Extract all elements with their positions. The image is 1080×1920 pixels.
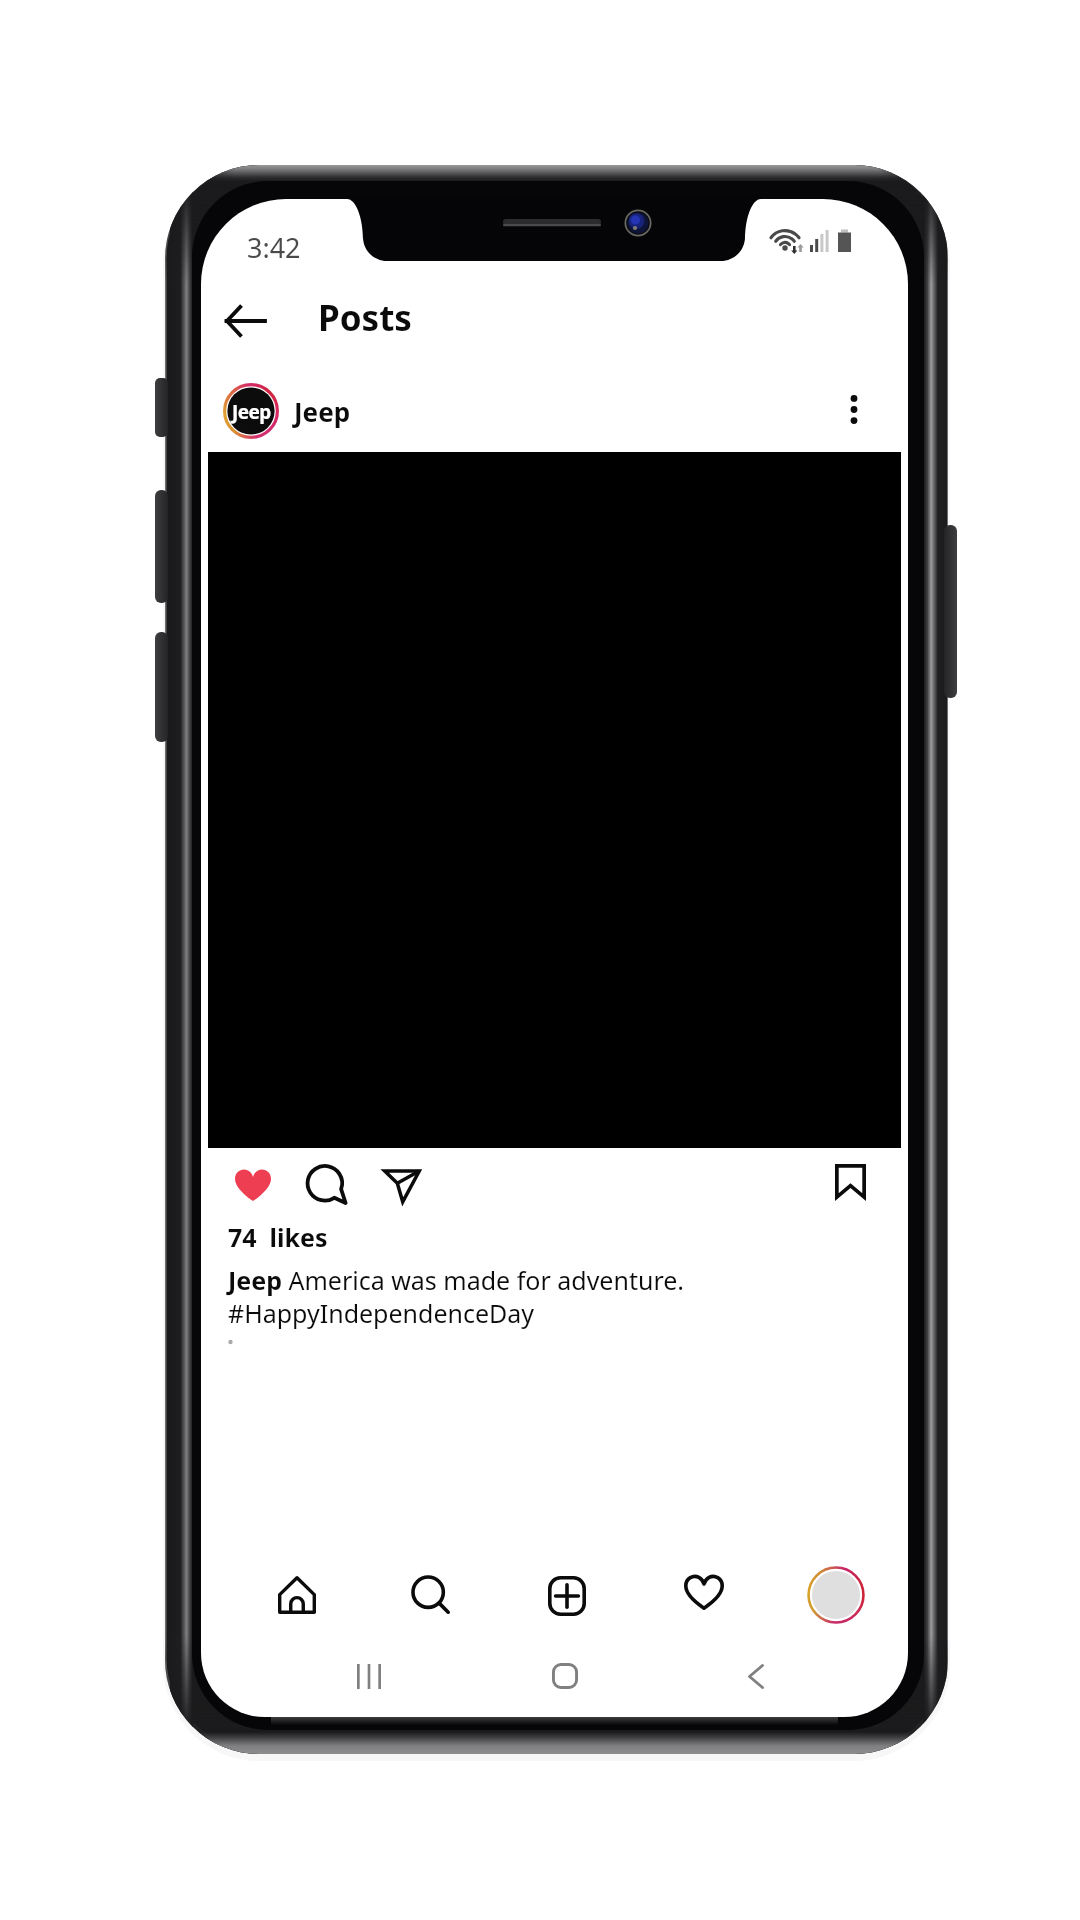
button[interactable]: More options	[822, 377, 886, 441]
button[interactable]: Jeep	[294, 394, 351, 429]
button[interactable]: Back	[727, 1647, 785, 1705]
button[interactable]: 74 likes	[228, 1220, 328, 1254]
button[interactable]: Save	[816, 1147, 884, 1215]
button[interactable]: Share	[368, 1151, 436, 1219]
button[interactable]: Profile	[801, 1560, 871, 1630]
button[interactable]: Activity	[669, 1557, 739, 1627]
button[interactable]: Search	[396, 1560, 466, 1630]
button[interactable]: Comment	[292, 1151, 360, 1219]
button[interactable]: Home	[536, 1647, 594, 1705]
staticText: 74 likes	[228, 1220, 328, 1254]
staticText: Posts	[318, 294, 412, 342]
button[interactable]: Back	[206, 282, 284, 360]
staticText: Jeep America was made for adventure. #Ha…	[228, 1263, 888, 1330]
button[interactable]: Unlike	[219, 1151, 287, 1219]
staticText: Jeep	[294, 394, 351, 429]
button[interactable]: Recent apps	[340, 1647, 398, 1705]
button[interactable]: Home	[262, 1560, 332, 1630]
staticText: 3:42	[247, 229, 301, 266]
button[interactable]: Jeep profile picture	[219, 379, 283, 443]
button[interactable]: Create	[532, 1561, 602, 1631]
staticText: Jeep	[232, 399, 271, 425]
